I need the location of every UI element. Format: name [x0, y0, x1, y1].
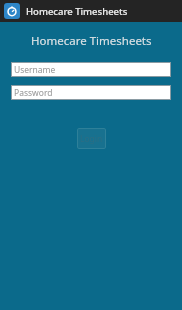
button[interactable]: Username [11, 62, 171, 77]
button[interactable]: Password [11, 85, 171, 100]
staticText: Homecare Timesheets [26, 5, 128, 18]
button[interactable]: Login [77, 128, 106, 149]
other: App icon [4, 3, 20, 19]
staticText: Login [80, 133, 103, 145]
staticText: Username [14, 64, 56, 76]
staticText: Password [14, 87, 53, 99]
staticText: Homecare Timesheets [31, 33, 152, 49]
